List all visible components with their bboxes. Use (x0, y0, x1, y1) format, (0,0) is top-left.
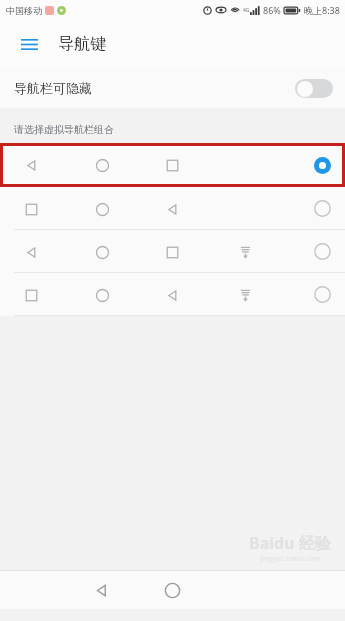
button[interactable]: Recents, Home, Back, Notifications layou… (0, 273, 345, 316)
button[interactable]: Home (155, 573, 189, 607)
staticText: Baidu 经验 (249, 532, 331, 554)
button[interactable]: Back (84, 573, 118, 607)
staticText: 86% (263, 4, 281, 16)
button[interactable]: 导航栏可隐藏 (0, 68, 345, 108)
staticText: 晚上8:38 (304, 4, 340, 16)
staticText: jingyan.baidu.com (260, 554, 321, 564)
button[interactable]: Back, Home, Recents, Notifications layou… (0, 230, 345, 273)
staticText: 中国移动 (6, 5, 42, 16)
button[interactable]: Menu (14, 29, 44, 59)
staticText: 4G (243, 7, 250, 14)
staticText: 导航栏可隐藏 (14, 80, 92, 96)
button[interactable]: Recents, Home, Back layout (0, 187, 345, 230)
staticText: 导航键 (58, 34, 106, 54)
button[interactable]: Back, Home, Recents layout selected (0, 143, 345, 187)
staticText: 请选择虚拟导航栏组合 (14, 123, 114, 136)
